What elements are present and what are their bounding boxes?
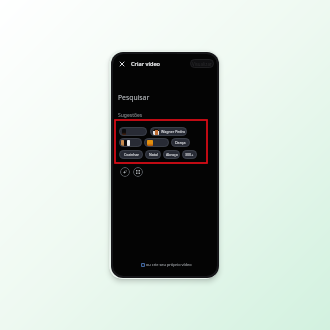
button[interactable]: Cozinhar [119, 150, 143, 159]
button[interactable]: Visualizar [190, 59, 214, 68]
button[interactable]: Sugestão [119, 138, 142, 147]
staticText: Natal [149, 152, 158, 157]
button[interactable]: Abraço [163, 150, 180, 159]
button[interactable]: Galeria [133, 167, 143, 177]
staticText: Abraço [166, 152, 178, 157]
button[interactable]: Natal [145, 150, 161, 159]
staticText: ou crie seu próprio vídeo [146, 262, 192, 267]
staticText: Visualizar [192, 61, 212, 67]
button[interactable]: Sugestão [144, 138, 169, 147]
button[interactable]: Criar com IA [120, 167, 130, 177]
staticText: Cozinhar [124, 152, 139, 157]
staticText: Wagner Pedro [161, 129, 186, 134]
staticText: Sugestões [118, 112, 143, 119]
button[interactable]: Sugestão [119, 127, 147, 136]
button[interactable]: 300+ [182, 150, 197, 159]
button[interactable]: Fechar [117, 59, 126, 68]
staticText: Pesquisar [118, 93, 150, 102]
staticText: 300+ [185, 152, 194, 157]
staticText: Dança [175, 140, 186, 145]
button[interactable]: Dança [171, 138, 190, 147]
staticText: Criar vídeo [131, 60, 161, 68]
button[interactable]: Wagner Pedro [150, 127, 187, 136]
